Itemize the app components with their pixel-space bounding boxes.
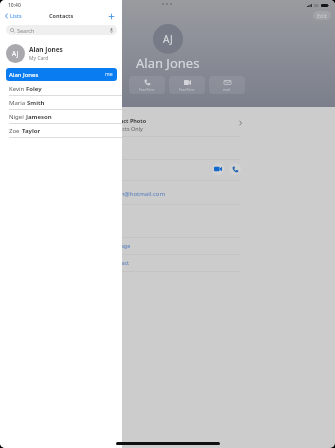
button[interactable]: mail xyxy=(209,76,245,94)
staticText: Alan Jones xyxy=(29,45,63,54)
button[interactable]: Add contact xyxy=(105,10,117,22)
staticText: Taylor xyxy=(22,127,41,135)
staticText: mail xyxy=(223,87,231,92)
staticText: Zoe xyxy=(9,127,22,135)
staticText: Search xyxy=(17,27,35,34)
button[interactable]: Lists xyxy=(5,12,22,19)
staticText: Edit xyxy=(317,12,327,19)
staticText: Foley xyxy=(26,85,42,93)
staticText: 10:40 xyxy=(8,2,21,9)
staticText: AJ xyxy=(163,32,173,46)
staticText: Send Message xyxy=(93,242,131,249)
staticText: Jameson xyxy=(26,113,52,121)
button[interactable]: alanjones.m@hotmail.com xyxy=(0,185,335,204)
staticText: Lists xyxy=(10,12,22,19)
staticText: Alan Jones xyxy=(136,54,200,72)
staticText: FaceTime xyxy=(179,87,195,92)
staticText: Share Contact xyxy=(93,259,130,266)
staticText: Maria xyxy=(9,99,27,107)
button[interactable]: Edit xyxy=(313,11,331,20)
button[interactable]: Search xyxy=(6,25,117,35)
staticText: Alan Jones xyxy=(9,71,39,79)
button[interactable]: Contact Photo xyxy=(0,113,335,136)
staticText: Nigel xyxy=(9,113,26,121)
staticText: Contacts xyxy=(49,12,74,19)
staticText: Contacts Only xyxy=(107,125,143,132)
button[interactable]: FaceTime xyxy=(129,76,165,94)
staticText: AJ xyxy=(12,49,19,58)
button[interactable]: Send Message xyxy=(0,238,335,254)
button[interactable]: FaceTime video xyxy=(212,163,224,175)
staticText: My Card xyxy=(29,55,49,62)
button[interactable]: Zoe xyxy=(0,124,122,138)
staticText: 5G xyxy=(314,3,319,8)
staticText: Smith xyxy=(27,99,45,107)
staticText: Kevin xyxy=(9,85,26,93)
button[interactable]: Share Contact xyxy=(0,255,335,271)
button[interactable]: AJ xyxy=(0,41,122,65)
staticText: me xyxy=(105,71,113,78)
staticText: alanjones.m@hotmail.com xyxy=(90,190,166,198)
button[interactable]: FaceTime audio xyxy=(229,163,241,175)
button[interactable]: Alan Jones xyxy=(6,68,117,81)
staticText: Contact Photo xyxy=(107,117,147,124)
staticText: FaceTime xyxy=(139,87,155,92)
button[interactable]: Nigel xyxy=(0,110,122,124)
button[interactable]: Maria xyxy=(0,96,122,110)
button[interactable]: Kevin xyxy=(0,82,122,96)
button[interactable]: FaceTime xyxy=(169,76,205,94)
